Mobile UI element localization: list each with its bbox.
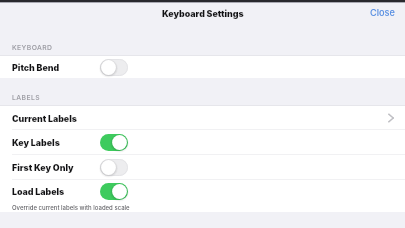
button[interactable]: Key Labels toggle — [100, 134, 128, 151]
button[interactable]: Load Labels toggle — [100, 183, 128, 200]
staticText: LABELS — [12, 93, 40, 101]
button[interactable]: Current Labels — [0, 106, 405, 130]
button[interactable]: Close — [370, 3, 405, 18]
staticText: Current Labels — [12, 113, 77, 124]
staticText: Override current labels with loaded scal… — [12, 204, 130, 211]
staticText: Close — [370, 7, 395, 18]
staticText: Load Labels — [12, 186, 65, 197]
button[interactable]: First Key Only — [0, 155, 405, 180]
staticText: Key Labels — [12, 137, 60, 148]
staticText: Pitch Bend — [12, 62, 60, 73]
button[interactable]: Load Labels — [0, 180, 405, 202]
button[interactable]: Pitch Bend toggle — [100, 59, 128, 76]
button[interactable]: Key Labels — [0, 130, 405, 155]
staticText: Keyboard Settings — [162, 8, 244, 19]
button[interactable]: Pitch Bend — [0, 56, 405, 78]
staticText: KEYBOARD — [12, 43, 53, 51]
other: Open Current Labels — [388, 113, 394, 123]
staticText: First Key Only — [12, 162, 74, 173]
button[interactable]: First Key Only toggle — [100, 159, 128, 176]
